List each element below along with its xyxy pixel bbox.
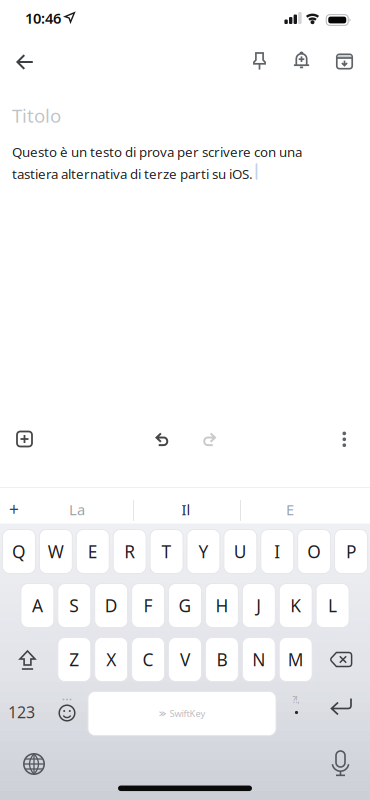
button[interactable]: W	[39, 529, 72, 573]
button[interactable]: G	[168, 583, 201, 627]
button[interactable]: E	[76, 529, 109, 573]
button[interactable]: X	[95, 637, 128, 681]
staticText: V	[180, 648, 190, 671]
button[interactable]: E	[250, 494, 330, 524]
button[interactable]	[5, 637, 49, 681]
staticText: Y	[198, 540, 208, 563]
button[interactable]: Il	[146, 494, 226, 524]
staticText: tastiera alternativa di terze parti su i…	[12, 165, 253, 183]
button[interactable]	[12, 742, 56, 786]
staticText: X	[106, 648, 116, 671]
staticText: Titolo	[12, 103, 61, 128]
button[interactable]: La	[37, 494, 117, 524]
button[interactable]	[149, 425, 173, 449]
button[interactable]: N	[242, 637, 275, 681]
button[interactable]: Z	[58, 637, 91, 681]
staticText: M	[288, 648, 304, 671]
button[interactable]: T	[150, 529, 183, 573]
button[interactable]: I	[261, 529, 294, 573]
button[interactable]: B	[205, 637, 238, 681]
button[interactable]	[326, 43, 362, 79]
staticText: 10:46	[25, 8, 61, 28]
button[interactable]: Q	[2, 529, 35, 573]
staticText: H	[215, 594, 228, 617]
button[interactable]: J	[242, 583, 275, 627]
staticText: N	[252, 648, 265, 671]
button[interactable]	[320, 637, 364, 681]
button[interactable]: U	[224, 529, 257, 573]
button[interactable]	[6, 421, 42, 457]
button[interactable]	[45, 690, 89, 734]
staticText: O	[307, 540, 321, 563]
staticText: K	[290, 594, 301, 617]
button[interactable]: R	[113, 529, 146, 573]
staticText: ?!,	[292, 695, 299, 705]
button[interactable]: SwiftKey	[88, 691, 276, 735]
staticText: 123	[8, 701, 35, 723]
staticText: La	[69, 500, 85, 519]
button[interactable]: O	[298, 529, 331, 573]
button[interactable]: M	[279, 637, 312, 681]
button[interactable]	[5, 42, 45, 82]
staticText: S	[69, 594, 79, 617]
button[interactable]	[318, 742, 362, 786]
button[interactable]: H	[205, 583, 238, 627]
button[interactable]: P	[335, 529, 367, 573]
staticText: A	[32, 594, 43, 617]
staticText: SwiftKey	[169, 707, 205, 720]
staticText: C	[143, 648, 154, 671]
button[interactable]: 123	[0, 690, 43, 734]
button[interactable]: A	[21, 583, 54, 627]
button[interactable]	[241, 43, 277, 79]
button[interactable]: ?!,	[274, 690, 318, 726]
button[interactable]	[198, 425, 222, 449]
staticText: W	[48, 540, 64, 563]
button[interactable]: K	[279, 583, 312, 627]
staticText: U	[234, 540, 247, 563]
staticText: T	[161, 540, 171, 563]
button[interactable]	[318, 686, 362, 730]
button[interactable]: S	[58, 583, 91, 627]
button[interactable]: Y	[187, 529, 220, 573]
button[interactable]: +	[0, 494, 29, 524]
staticText: Il	[181, 500, 190, 519]
staticText: G	[178, 594, 191, 617]
staticText: Q	[12, 540, 26, 563]
staticText: E	[88, 540, 98, 563]
staticText: F	[144, 594, 153, 617]
staticText: Z	[69, 648, 79, 671]
button[interactable]: C	[132, 637, 165, 681]
button[interactable]	[283, 43, 319, 79]
staticText: R	[124, 540, 135, 563]
staticText: P	[346, 540, 356, 563]
staticText: Questo è un testo di prova per scrivere …	[12, 143, 302, 161]
staticText: D	[105, 594, 118, 617]
button[interactable]: V	[168, 637, 201, 681]
staticText: L	[328, 594, 337, 617]
button[interactable]	[332, 427, 356, 451]
staticText: B	[216, 648, 227, 671]
button[interactable]: D	[95, 583, 128, 627]
staticText: +	[9, 497, 19, 520]
staticText: J	[256, 594, 261, 617]
staticText: E	[286, 500, 294, 519]
button[interactable]: L	[316, 583, 349, 627]
button[interactable]: F	[132, 583, 164, 627]
staticText: I	[274, 540, 280, 563]
